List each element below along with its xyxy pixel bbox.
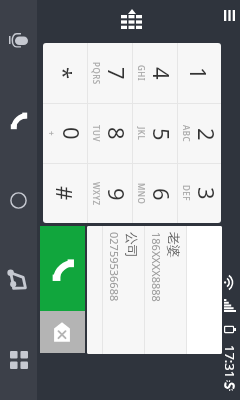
staticText: 0: [57, 127, 87, 140]
staticText: TUV: [91, 125, 102, 142]
staticText: MNO: [136, 183, 147, 205]
staticText: JKL: [136, 127, 147, 141]
button[interactable]: 6: [133, 164, 177, 223]
staticText: +: [46, 131, 57, 137]
button[interactable]: 3: [178, 164, 221, 223]
staticText: ABC: [181, 125, 192, 143]
button[interactable]: Home: [0, 160, 37, 240]
staticText: 7: [102, 67, 132, 80]
staticText: 4: [147, 67, 177, 80]
staticText: GHI: [136, 65, 147, 82]
staticText: 3: [192, 187, 221, 200]
button[interactable]: *: [43, 43, 87, 103]
button[interactable]: 2: [178, 104, 221, 163]
button[interactable]: Recent apps: [0, 320, 37, 400]
button[interactable]: Call: [40, 226, 85, 311]
staticText: 8: [102, 127, 132, 140]
button[interactable]: Delete: [40, 311, 85, 353]
staticText: 9: [102, 188, 132, 201]
button[interactable]: Back: [0, 240, 37, 320]
button[interactable]: 4: [133, 43, 177, 103]
button[interactable]: Hide dialpad: [115, 3, 148, 35]
button[interactable]: 老婆: [145, 226, 186, 354]
staticText: WXYZ: [91, 182, 102, 206]
staticText: 公司: [124, 232, 140, 258]
staticText: *: [50, 67, 80, 80]
button[interactable]: 8: [88, 104, 132, 163]
button[interactable]: Voice search: [0, 0, 37, 80]
button[interactable]: 9: [88, 164, 132, 223]
staticText: 186XXXX8888: [149, 232, 164, 302]
staticText: DEF: [181, 185, 192, 202]
staticText: 02759536688: [107, 232, 122, 302]
staticText: #: [50, 186, 80, 201]
button[interactable]: 1: [178, 43, 221, 103]
button[interactable]: 7: [88, 43, 132, 103]
button[interactable]: Dialer: [0, 80, 37, 160]
staticText: 17:31: [221, 345, 239, 379]
button[interactable]: 5: [133, 104, 177, 163]
staticText: 老婆: [166, 232, 182, 258]
staticText: 5: [147, 128, 177, 141]
staticText: 6: [147, 188, 177, 201]
button[interactable]: Menu: [220, 2, 240, 29]
button[interactable]: #: [43, 164, 87, 223]
button[interactable]: 公司: [103, 226, 144, 354]
staticText: PQRS: [91, 62, 102, 85]
staticText: 1: [184, 67, 214, 80]
button[interactable]: 0: [43, 104, 87, 163]
staticText: 2: [192, 128, 221, 141]
